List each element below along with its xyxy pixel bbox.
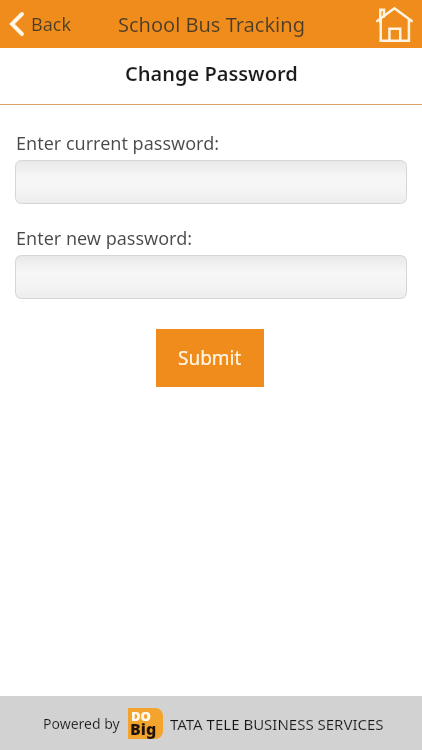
staticText: Back <box>31 12 72 37</box>
button[interactable] <box>15 255 407 299</box>
button[interactable]: Home <box>372 2 416 46</box>
staticText: Big <box>130 718 157 739</box>
staticText: Change Password <box>125 60 298 87</box>
button[interactable]: Back <box>0 0 86 48</box>
staticText: DO <box>131 708 151 725</box>
staticText: Powered by <box>43 714 120 733</box>
staticText: TATA TELE BUSINESS SERVICES <box>170 714 384 734</box>
button[interactable] <box>15 160 407 204</box>
staticText: Enter current password: <box>16 131 220 156</box>
button[interactable]: Do Big <box>128 708 163 739</box>
staticText: School Bus Tracking <box>118 11 305 38</box>
staticText: Enter new password: <box>16 226 193 251</box>
staticText: Submit <box>178 345 242 371</box>
button[interactable]: Submit <box>156 329 264 387</box>
